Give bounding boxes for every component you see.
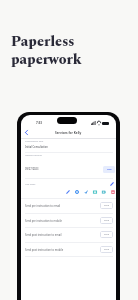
staticText: Send — [104, 248, 110, 251]
staticText: Services for Kelly — [55, 131, 82, 135]
button[interactable]: Send post instruction to email — [21, 227, 116, 242]
staticText: Consultation type — [25, 140, 44, 143]
staticText: Send pre instruction to mobile — [25, 219, 100, 223]
button[interactable]: Send post instruction to mobile — [21, 242, 116, 257]
button[interactable]: Attach — [81, 188, 90, 196]
button[interactable]: Back — [21, 127, 32, 138]
staticText: Send post instruction to mobile — [25, 248, 100, 252]
button[interactable]: Send — [100, 202, 113, 209]
button[interactable]: Send — [100, 217, 113, 224]
button[interactable]: Record — [72, 188, 81, 196]
staticText: Send post instruction to email — [25, 233, 100, 237]
staticText: Meeting records — [25, 154, 42, 157]
button[interactable]: Send pre instruction to mobile — [21, 213, 116, 228]
staticText: Initial Consultation — [25, 145, 48, 148]
button[interactable]: Draw — [63, 188, 72, 196]
staticText: Add notes — [25, 183, 36, 186]
staticText: ADD — [107, 168, 112, 171]
button[interactable]: Delete — [108, 188, 116, 196]
button[interactable]: Send pre instruction to email — [21, 198, 116, 213]
button[interactable]: Edit notes — [107, 179, 116, 188]
staticText: 09/27/2023 — [25, 167, 39, 170]
button[interactable]: Send — [100, 231, 113, 238]
staticText: Send — [104, 233, 110, 236]
staticText: Send pre instruction to email — [25, 204, 100, 208]
button[interactable]: Photo — [90, 188, 99, 196]
button[interactable]: Video — [99, 188, 108, 196]
staticText: Paperless paperwork — [11, 31, 82, 70]
staticText: Send — [104, 219, 110, 222]
button[interactable]: ADD — [103, 166, 115, 173]
button[interactable]: Send — [100, 246, 113, 253]
staticText: Send — [104, 204, 110, 207]
staticText: 7:33 — [36, 121, 42, 125]
